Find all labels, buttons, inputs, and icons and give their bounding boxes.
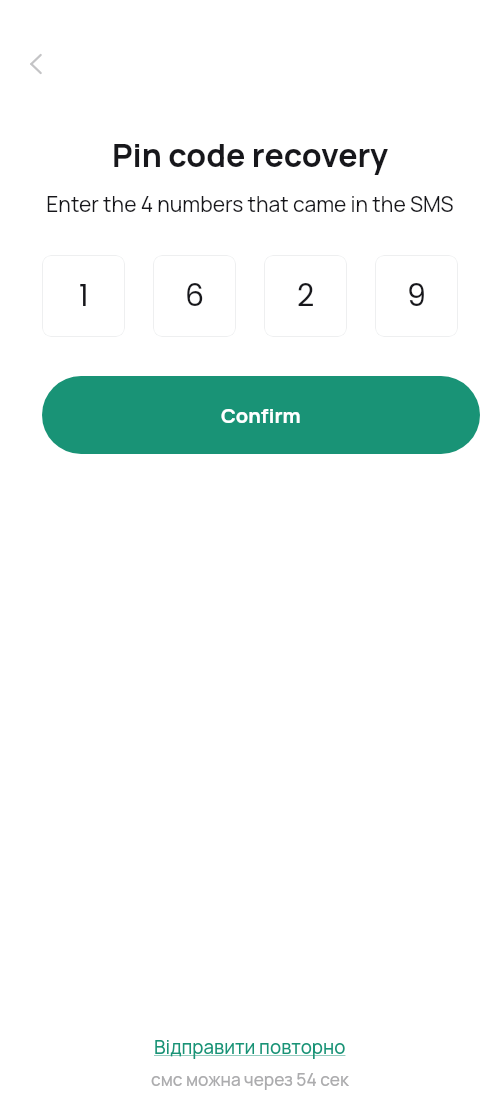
staticText: 2 <box>297 275 315 317</box>
button[interactable]: Confirm <box>42 376 480 454</box>
staticText: смс можна через 54 сек <box>151 1068 349 1092</box>
button[interactable]: Back <box>12 40 60 88</box>
staticText: Відправити повторно <box>154 1034 346 1060</box>
staticText: Enter the 4 numbers that came in the SMS <box>0 190 500 219</box>
staticText: 6 <box>185 275 205 317</box>
button[interactable]: 6 <box>153 255 236 337</box>
staticText: 9 <box>407 275 426 317</box>
button[interactable]: Відправити повторно <box>150 1032 350 1062</box>
button[interactable]: 1 <box>42 255 125 337</box>
staticText: 1 <box>79 275 89 317</box>
button[interactable]: 9 <box>375 255 458 337</box>
button[interactable]: 2 <box>264 255 347 337</box>
staticText: Confirm <box>221 402 301 429</box>
staticText: Pin code recovery <box>0 133 500 177</box>
